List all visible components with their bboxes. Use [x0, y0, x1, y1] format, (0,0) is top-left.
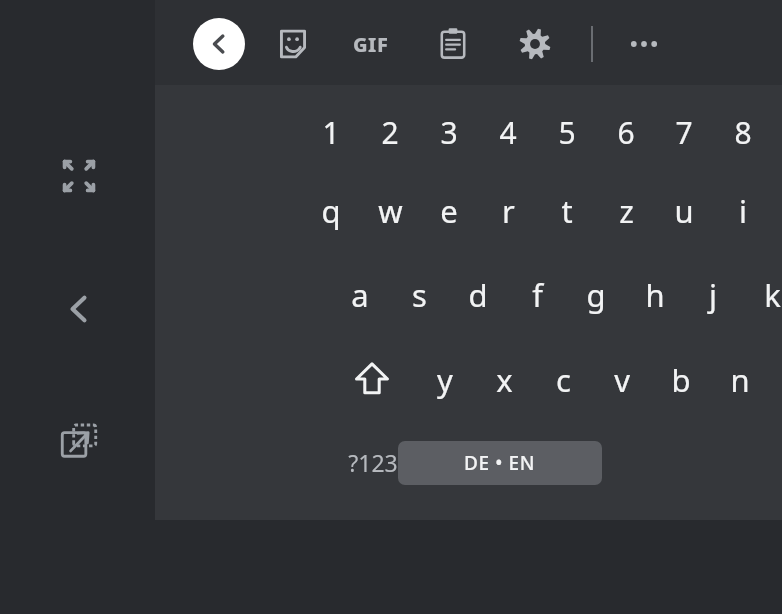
button[interactable]: ?123 [341, 433, 405, 491]
button[interactable]: 5 [538, 103, 596, 161]
button[interactable]: y [416, 351, 474, 409]
button[interactable]: g [567, 266, 625, 324]
staticText: w [378, 190, 403, 232]
staticText: k [764, 274, 781, 316]
button[interactable]: 4 [479, 103, 537, 161]
staticText: r [502, 190, 515, 232]
button[interactable]: Back [53, 283, 105, 335]
button[interactable]: b [652, 351, 710, 409]
staticText: z [619, 190, 634, 232]
staticText: n [730, 359, 750, 401]
button[interactable]: n [711, 351, 769, 409]
button[interactable]: 1 [302, 103, 360, 161]
staticText: q [321, 190, 341, 232]
button[interactable]: Back [193, 18, 245, 70]
button[interactable]: c [534, 351, 592, 409]
staticText: 3 [440, 112, 458, 153]
staticText: ?123 [348, 447, 398, 478]
button[interactable]: Stickers [267, 18, 319, 70]
button[interactable]: 2 [361, 103, 419, 161]
staticText: 4 [499, 112, 517, 153]
button[interactable]: z [597, 182, 655, 240]
button[interactable]: 6 [597, 103, 655, 161]
button[interactable]: Fullscreen [53, 150, 105, 202]
staticText: d [468, 274, 488, 316]
button[interactable]: t [538, 182, 596, 240]
button[interactable]: Emoji [417, 433, 475, 491]
staticText: 1 [322, 112, 340, 153]
staticText: e [440, 190, 458, 232]
staticText: f [532, 274, 543, 316]
staticText: x [496, 359, 513, 401]
button[interactable]: DE • EN [398, 441, 602, 485]
staticText: g [586, 274, 606, 316]
staticText: y [437, 359, 453, 401]
button[interactable]: Clipboard [427, 18, 479, 70]
button[interactable]: d [449, 266, 507, 324]
staticText: GIF [353, 31, 389, 58]
staticText: t [561, 190, 573, 232]
staticText: 5 [558, 112, 576, 153]
button[interactable]: k [743, 266, 782, 324]
staticText: 8 [734, 112, 752, 153]
staticText: 2 [381, 112, 399, 153]
staticText: 6 [617, 112, 635, 153]
staticText: a [351, 274, 369, 316]
button[interactable]: v [593, 351, 651, 409]
staticText: b [671, 359, 691, 401]
staticText: u [674, 190, 694, 232]
staticText: v [614, 359, 630, 401]
staticText: j [709, 274, 717, 316]
button[interactable]: w [361, 182, 419, 240]
button[interactable]: s [390, 266, 448, 324]
staticText: i [739, 190, 747, 232]
staticText: c [556, 359, 571, 401]
staticText: 7 [675, 112, 693, 153]
button[interactable]: More options [618, 18, 670, 70]
button[interactable]: Open in new window [53, 415, 105, 467]
staticText: DE • EN [464, 450, 536, 476]
button[interactable]: q [302, 182, 360, 240]
button[interactable]: f [508, 266, 566, 324]
button[interactable]: Change language [475, 433, 533, 491]
button[interactable]: 8 [714, 103, 772, 161]
staticText: s [412, 274, 427, 316]
button[interactable]: r [479, 182, 537, 240]
button[interactable]: 7 [655, 103, 713, 161]
button[interactable]: a [331, 266, 389, 324]
button[interactable]: u [655, 182, 713, 240]
button[interactable]: 3 [420, 103, 478, 161]
button[interactable]: h [626, 266, 684, 324]
button[interactable]: x [475, 351, 533, 409]
button[interactable]: Settings [509, 18, 561, 70]
button[interactable]: i [714, 182, 772, 240]
button[interactable]: j [684, 266, 742, 324]
staticText: h [645, 274, 665, 316]
button[interactable]: e [420, 182, 478, 240]
button[interactable]: Shift [343, 350, 401, 408]
button[interactable]: GIF [345, 18, 397, 70]
